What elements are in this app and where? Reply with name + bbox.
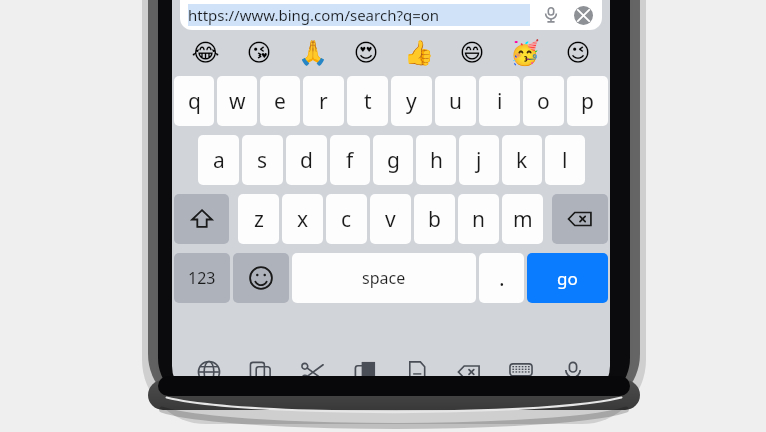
staticText: y — [406, 87, 417, 116]
staticText: b — [428, 205, 441, 234]
staticText: 🙏 — [298, 39, 328, 67]
staticText: c — [341, 205, 352, 234]
staticText: s — [257, 146, 268, 175]
staticText: o — [537, 87, 550, 116]
button[interactable]: Cut — [296, 355, 330, 389]
staticText: w — [229, 87, 246, 116]
staticText: z — [254, 205, 264, 234]
staticText: . — [499, 264, 505, 293]
button[interactable]: p — [567, 76, 608, 126]
button[interactable]: g — [373, 135, 413, 185]
staticText: k — [516, 146, 528, 175]
button[interactable]: Voice input — [556, 355, 590, 389]
staticText: 👍 — [404, 39, 434, 67]
staticText: space — [362, 267, 406, 289]
button[interactable]: Document — [400, 355, 434, 389]
staticText: i — [497, 87, 503, 116]
button[interactable]: go — [527, 253, 608, 303]
staticText: 😉 — [565, 39, 591, 67]
staticText: 🥳 — [510, 39, 540, 67]
staticText: 😄 — [459, 39, 485, 67]
staticText: e — [274, 87, 286, 116]
staticText: t — [364, 87, 372, 116]
button[interactable]: 😍 — [339, 32, 392, 74]
staticText: p — [581, 87, 594, 116]
button[interactable]: f — [330, 135, 370, 185]
button[interactable]: Delete — [452, 355, 486, 389]
button[interactable]: w — [217, 76, 257, 126]
staticText: 😂 — [191, 39, 220, 67]
button[interactable]: z — [238, 194, 279, 244]
staticText: h — [430, 146, 443, 175]
staticText: 😘 — [246, 39, 272, 67]
button[interactable]: h — [416, 135, 456, 185]
button[interactable]: Clear text — [570, 2, 596, 28]
button[interactable]: 123 — [174, 253, 230, 303]
button[interactable]: c — [326, 194, 367, 244]
staticText: n — [472, 205, 485, 234]
staticText: f — [346, 146, 354, 175]
button[interactable]: 😂 — [178, 32, 232, 74]
button[interactable]: 🥳 — [498, 32, 551, 74]
button[interactable]: q — [174, 76, 214, 126]
button[interactable]: space — [292, 253, 476, 303]
button[interactable]: Emoji keyboard — [233, 253, 289, 303]
button[interactable]: v — [370, 194, 411, 244]
staticText: https://www.bing.com/search?q=on — [188, 5, 440, 25]
staticText: x — [297, 205, 309, 234]
button[interactable]: s — [242, 135, 283, 185]
staticText: l — [562, 146, 568, 175]
button[interactable]: 🙏 — [286, 32, 339, 74]
button[interactable]: b — [414, 194, 455, 244]
staticText: r — [319, 87, 328, 116]
button[interactable]: k — [502, 135, 542, 185]
button[interactable]: t — [347, 76, 388, 126]
button[interactable]: Copy — [244, 355, 278, 389]
staticText: 😍 — [353, 39, 379, 67]
staticText: j — [476, 146, 482, 175]
button[interactable]: Hide keyboard — [504, 355, 538, 389]
button[interactable]: j — [459, 135, 499, 185]
staticText: d — [300, 146, 313, 175]
button[interactable]: d — [286, 135, 327, 185]
staticText: q — [188, 87, 201, 116]
button[interactable]: r — [303, 76, 344, 126]
button[interactable]: . — [479, 253, 524, 303]
button[interactable]: u — [435, 76, 476, 126]
button[interactable]: Backspace — [552, 194, 608, 244]
button[interactable]: 😘 — [232, 32, 286, 74]
button[interactable]: l — [545, 135, 585, 185]
staticText: v — [385, 205, 396, 234]
button[interactable]: 😄 — [445, 32, 498, 74]
staticText: u — [449, 87, 462, 116]
button[interactable]: 😉 — [551, 32, 604, 74]
button[interactable]: i — [479, 76, 520, 126]
button[interactable]: a — [198, 135, 239, 185]
staticText: go — [557, 267, 578, 290]
button[interactable]: Voice search — [538, 2, 564, 28]
button[interactable]: y — [391, 76, 432, 126]
button[interactable]: Translate — [192, 355, 226, 389]
button[interactable]: Shift — [174, 194, 229, 244]
button[interactable]: x — [282, 194, 323, 244]
button[interactable]: e — [260, 76, 300, 126]
staticText: 123 — [188, 267, 216, 289]
button[interactable]: Paste — [348, 355, 382, 389]
staticText: m — [513, 205, 533, 234]
button[interactable]: m — [502, 194, 543, 244]
staticText: a — [213, 146, 225, 175]
button[interactable]: n — [458, 194, 499, 244]
button[interactable]: o — [523, 76, 564, 126]
button[interactable]: 👍 — [392, 32, 445, 74]
staticText: g — [387, 146, 400, 175]
